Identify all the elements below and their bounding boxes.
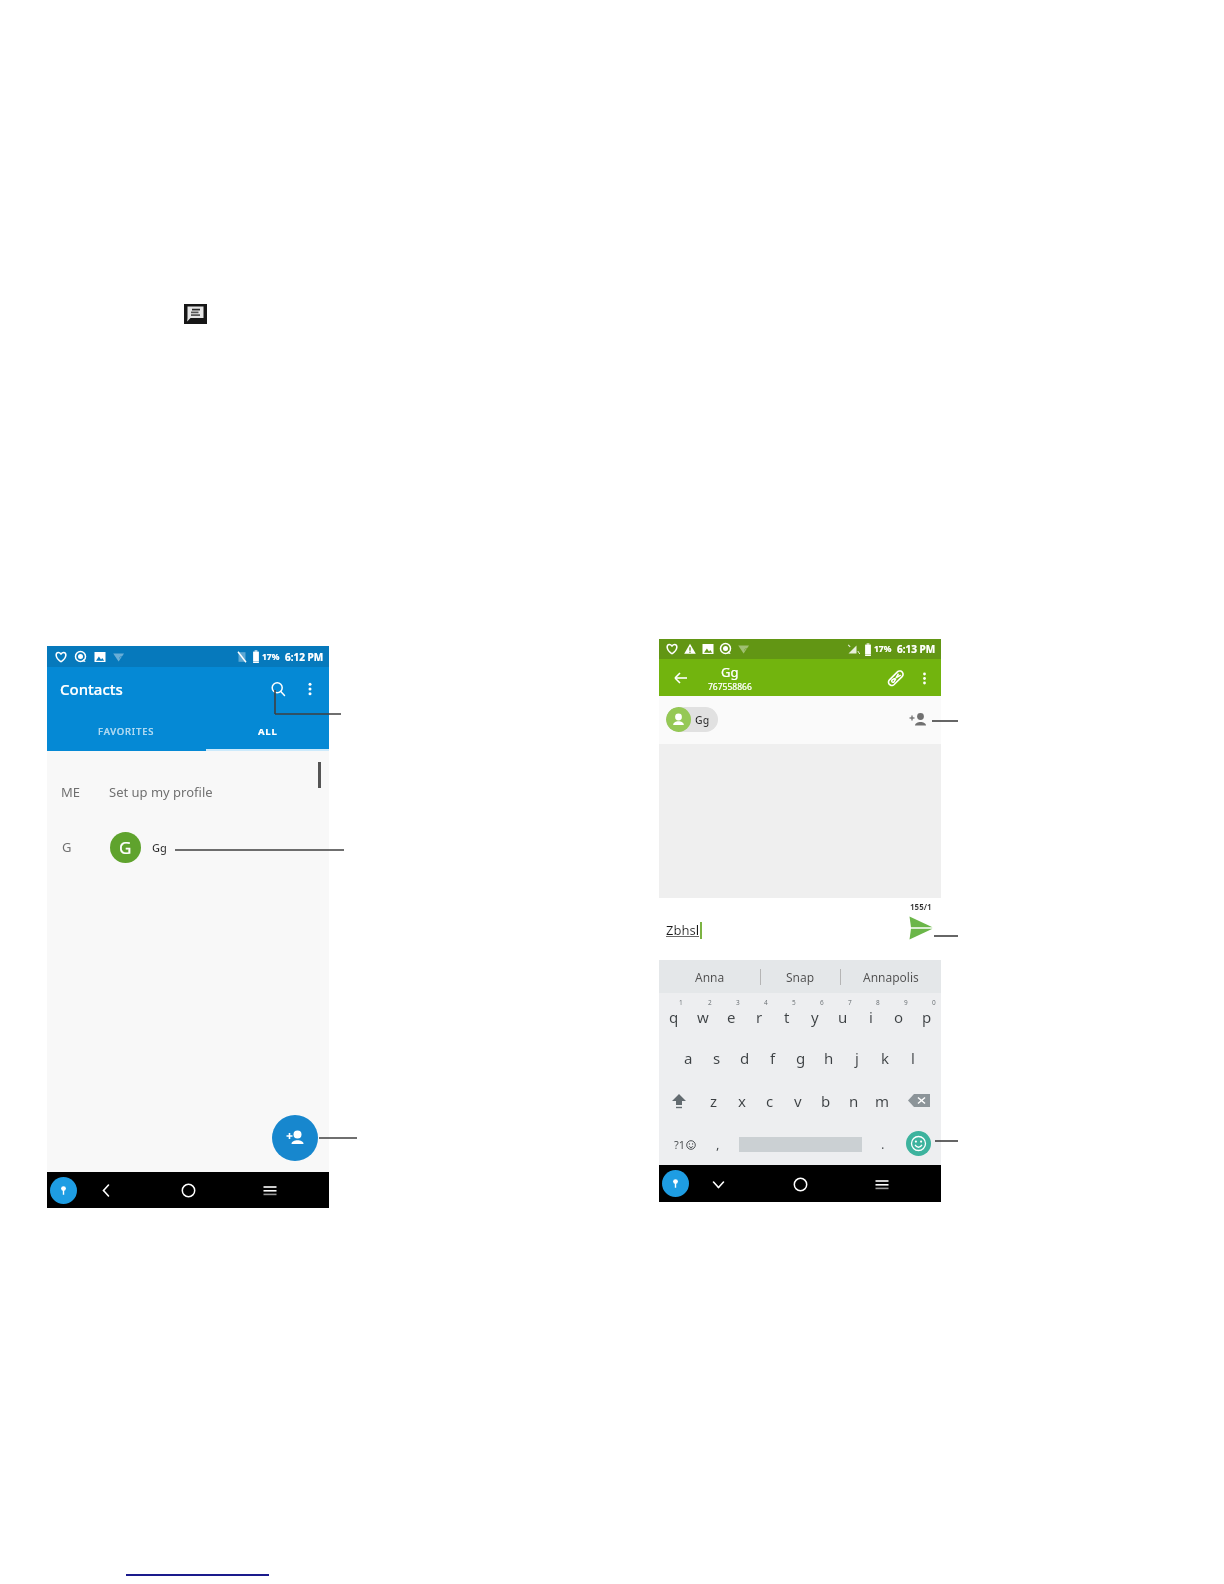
button[interactable]: k bbox=[871, 1036, 899, 1079]
staticText: 767558866 bbox=[708, 681, 752, 693]
button[interactable]: z bbox=[699, 1079, 728, 1122]
button[interactable]: More options bbox=[910, 664, 938, 692]
button[interactable]: Back bbox=[702, 1168, 734, 1200]
button[interactable]: Shift bbox=[659, 1079, 699, 1122]
button[interactable]: Recents bbox=[866, 1168, 898, 1200]
staticText: f bbox=[770, 1048, 776, 1068]
staticText: q bbox=[669, 1007, 679, 1027]
button[interactable]: Space bbox=[739, 1124, 862, 1164]
button[interactable]: Recents bbox=[254, 1174, 286, 1206]
staticText: g bbox=[796, 1048, 806, 1068]
button[interactable]: ALL bbox=[206, 711, 329, 751]
button[interactable]: h bbox=[815, 1036, 843, 1079]
staticText: o bbox=[894, 1007, 904, 1027]
button[interactable]: Send bbox=[905, 912, 937, 944]
button[interactable]: Search bbox=[261, 672, 295, 706]
staticText: 7 bbox=[848, 998, 852, 1007]
button[interactable]: 5 bbox=[773, 993, 801, 1036]
staticText: G bbox=[62, 838, 72, 856]
button[interactable]: v bbox=[784, 1079, 812, 1122]
staticText: 6 bbox=[820, 998, 824, 1007]
staticText: k bbox=[881, 1048, 890, 1068]
staticText: m bbox=[875, 1091, 890, 1111]
button[interactable]: f bbox=[759, 1036, 787, 1079]
button[interactable]: Assistant bbox=[50, 1177, 77, 1204]
button[interactable]: , bbox=[704, 1124, 732, 1164]
button[interactable]: c bbox=[756, 1079, 784, 1122]
staticText: w bbox=[697, 1007, 709, 1027]
button[interactable]: b bbox=[812, 1079, 840, 1122]
staticText: 8 bbox=[876, 998, 880, 1007]
staticText: Anna bbox=[695, 969, 725, 985]
button[interactable]: Symbols bbox=[666, 1124, 704, 1164]
button[interactable]: Annapolis bbox=[841, 960, 941, 993]
staticText: ?1 bbox=[674, 1137, 686, 1152]
button[interactable]: Gg bbox=[666, 707, 718, 732]
staticText: FAVORITES bbox=[98, 725, 155, 738]
button[interactable]: Back bbox=[664, 661, 698, 695]
button[interactable]: 6 bbox=[801, 993, 829, 1036]
button[interactable]: a bbox=[674, 1036, 703, 1079]
button[interactable]: s bbox=[703, 1036, 731, 1079]
staticText: 17% bbox=[262, 651, 280, 663]
staticText: Gg bbox=[695, 713, 710, 727]
staticText: a bbox=[684, 1048, 693, 1068]
staticText: e bbox=[727, 1007, 736, 1027]
button[interactable]: Add contact bbox=[272, 1115, 318, 1161]
button[interactable]: Home bbox=[172, 1174, 204, 1206]
staticText: 17% bbox=[874, 643, 892, 655]
button[interactable]: FAVORITES bbox=[47, 711, 206, 751]
staticText: l bbox=[911, 1048, 915, 1068]
button[interactable]: j bbox=[843, 1036, 871, 1079]
button[interactable]: 4 bbox=[745, 993, 773, 1036]
staticText: d bbox=[740, 1048, 750, 1068]
staticText: , bbox=[716, 1135, 720, 1153]
button[interactable]: n bbox=[840, 1079, 868, 1122]
button[interactable]: 7 bbox=[829, 993, 857, 1036]
button[interactable]: Attach bbox=[880, 663, 910, 693]
button[interactable]: G bbox=[47, 829, 329, 865]
button[interactable]: 3 bbox=[717, 993, 745, 1036]
staticText: Contacts bbox=[60, 679, 123, 699]
staticText: G bbox=[119, 836, 132, 859]
button[interactable]: Anna bbox=[659, 960, 760, 993]
button[interactable]: Back bbox=[90, 1174, 122, 1206]
staticText: v bbox=[794, 1091, 802, 1111]
staticText: r bbox=[756, 1007, 763, 1027]
button[interactable]: ME bbox=[47, 773, 329, 810]
staticText: c bbox=[766, 1091, 774, 1111]
button[interactable]: Home bbox=[784, 1168, 816, 1200]
staticText: 1 bbox=[679, 998, 683, 1007]
staticText: b bbox=[821, 1091, 831, 1111]
staticText: 2 bbox=[708, 998, 712, 1007]
button[interactable]: m bbox=[868, 1079, 896, 1122]
staticText: 3 bbox=[736, 998, 740, 1007]
button[interactable]: 0 bbox=[913, 993, 941, 1036]
staticText: 6:13 PM bbox=[897, 642, 936, 656]
staticText: y bbox=[811, 1007, 819, 1027]
button[interactable]: 2 bbox=[688, 993, 717, 1036]
button[interactable]: Emoji bbox=[906, 1131, 931, 1156]
staticText: Gg bbox=[152, 840, 167, 855]
staticText: Snap bbox=[786, 969, 815, 985]
staticText: 155/1 bbox=[910, 901, 932, 912]
button[interactable]: 8 bbox=[857, 993, 885, 1036]
staticText: x bbox=[738, 1091, 746, 1111]
button[interactable]: d bbox=[731, 1036, 759, 1079]
staticText: 4 bbox=[764, 998, 768, 1007]
button[interactable]: Add recipient bbox=[905, 707, 931, 733]
button[interactable]: 1 bbox=[659, 993, 688, 1036]
staticText: p bbox=[922, 1007, 932, 1027]
staticText: u bbox=[838, 1007, 848, 1027]
button[interactable]: 9 bbox=[885, 993, 913, 1036]
staticText: n bbox=[849, 1091, 859, 1111]
button[interactable]: Assistant bbox=[662, 1170, 689, 1197]
button[interactable]: Snap bbox=[761, 960, 840, 993]
button[interactable]: x bbox=[728, 1079, 756, 1122]
button[interactable]: Delete bbox=[896, 1079, 941, 1122]
staticText: s bbox=[713, 1048, 721, 1068]
button[interactable]: g bbox=[787, 1036, 815, 1079]
button[interactable]: . bbox=[869, 1124, 897, 1164]
button[interactable]: More options bbox=[295, 674, 325, 704]
button[interactable]: l bbox=[899, 1036, 927, 1079]
